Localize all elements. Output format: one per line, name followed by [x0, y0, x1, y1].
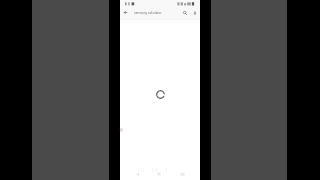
button[interactable]: Voice search	[190, 8, 200, 18]
button[interactable]: Recent apps	[177, 169, 187, 179]
button[interactable]: Navigate up	[120, 7, 130, 17]
button[interactable]: Home	[154, 169, 164, 179]
button[interactable]: Search	[180, 8, 190, 18]
button[interactable]: samsung calculator	[134, 8, 182, 18]
staticText: samsung calculator	[134, 11, 162, 15]
button[interactable]: Back	[132, 169, 142, 179]
